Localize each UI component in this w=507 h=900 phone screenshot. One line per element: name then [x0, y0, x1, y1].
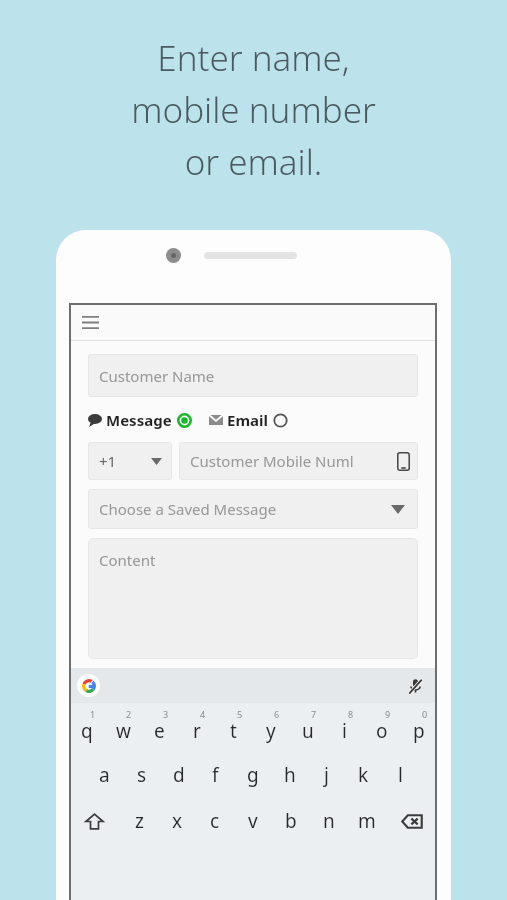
staticText: 3	[163, 708, 169, 720]
staticText: c	[210, 808, 220, 834]
button[interactable]: v	[234, 798, 272, 844]
staticText: y	[266, 718, 276, 744]
staticText: 6	[274, 708, 280, 720]
staticText: h	[284, 762, 296, 788]
button[interactable]: Customer Mobile Numl	[179, 442, 418, 480]
button[interactable]: Google	[77, 674, 100, 697]
staticText: a	[99, 762, 110, 788]
staticText: l	[398, 762, 403, 788]
button[interactable]: Message	[88, 410, 194, 430]
button[interactable]: 1	[69, 703, 105, 752]
staticText: 0	[422, 708, 428, 720]
staticText: t	[230, 718, 237, 744]
staticText: 1	[90, 708, 96, 720]
staticText: Enter name,	[0, 34, 507, 82]
button[interactable]: c	[196, 798, 234, 844]
staticText: x	[172, 808, 183, 834]
staticText: p	[413, 718, 425, 744]
staticText: i	[342, 718, 347, 744]
staticText: b	[285, 808, 297, 834]
staticText: v	[248, 808, 258, 834]
staticText: Message	[106, 410, 172, 430]
staticText: s	[137, 762, 147, 788]
staticText: g	[247, 762, 259, 788]
button[interactable]: 5	[215, 703, 252, 752]
staticText: 5	[237, 708, 243, 720]
staticText: Customer Name	[99, 366, 215, 386]
button[interactable]: 9	[363, 703, 400, 752]
staticText: n	[323, 808, 335, 834]
button[interactable]: k	[345, 752, 382, 798]
button[interactable]: f	[197, 752, 234, 798]
button[interactable]: 8	[326, 703, 363, 752]
button[interactable]: s	[123, 752, 160, 798]
staticText: Choose a Saved Message	[99, 499, 277, 519]
staticText: d	[173, 762, 185, 788]
staticText: m	[358, 808, 376, 834]
staticText: or email.	[0, 138, 507, 186]
staticText: Content	[99, 550, 156, 570]
button[interactable]: Voice input muted	[403, 674, 427, 698]
button[interactable]: b	[272, 798, 310, 844]
staticText: Email	[227, 410, 268, 430]
button[interactable]: j	[308, 752, 345, 798]
button[interactable]: Open navigation menu	[77, 309, 103, 335]
button[interactable]: z	[120, 798, 158, 844]
staticText: e	[154, 718, 165, 744]
staticText: mobile number	[0, 86, 507, 134]
button[interactable]: h	[271, 752, 308, 798]
staticText: 2	[126, 708, 132, 720]
staticText: q	[81, 718, 93, 744]
staticText: 8	[348, 708, 354, 720]
button[interactable]: +1	[88, 442, 172, 480]
button[interactable]: g	[234, 752, 271, 798]
button[interactable]: n	[310, 798, 348, 844]
button[interactable]: l	[382, 752, 419, 798]
staticText: 9	[385, 708, 391, 720]
staticText: z	[135, 808, 144, 834]
staticText: w	[116, 718, 131, 744]
button[interactable]: Choose a Saved Message	[88, 489, 418, 529]
staticText: u	[302, 718, 314, 744]
staticText: Customer Mobile Numl	[190, 451, 354, 471]
button[interactable]: 6	[252, 703, 289, 752]
staticText: j	[324, 762, 329, 788]
staticText: o	[376, 718, 388, 744]
button[interactable]: d	[160, 752, 197, 798]
staticText: 4	[200, 708, 206, 720]
button[interactable]: Customer Name	[88, 354, 418, 397]
button[interactable]: 3	[141, 703, 178, 752]
button[interactable]: a	[86, 752, 123, 798]
staticText: k	[358, 762, 369, 788]
button[interactable]: 7	[289, 703, 326, 752]
button[interactable]: 0	[400, 703, 437, 752]
staticText: f	[212, 762, 219, 788]
button[interactable]: Content	[88, 538, 418, 659]
button[interactable]: Email	[209, 410, 288, 430]
staticText: +1	[99, 451, 117, 471]
button[interactable]: x	[158, 798, 196, 844]
button[interactable]: 4	[178, 703, 215, 752]
button[interactable]: Shift	[69, 798, 120, 844]
button[interactable]: Backspace	[386, 798, 437, 844]
button[interactable]: m	[348, 798, 386, 844]
staticText: 7	[311, 708, 317, 720]
button[interactable]: 2	[105, 703, 141, 752]
staticText: r	[193, 718, 201, 744]
